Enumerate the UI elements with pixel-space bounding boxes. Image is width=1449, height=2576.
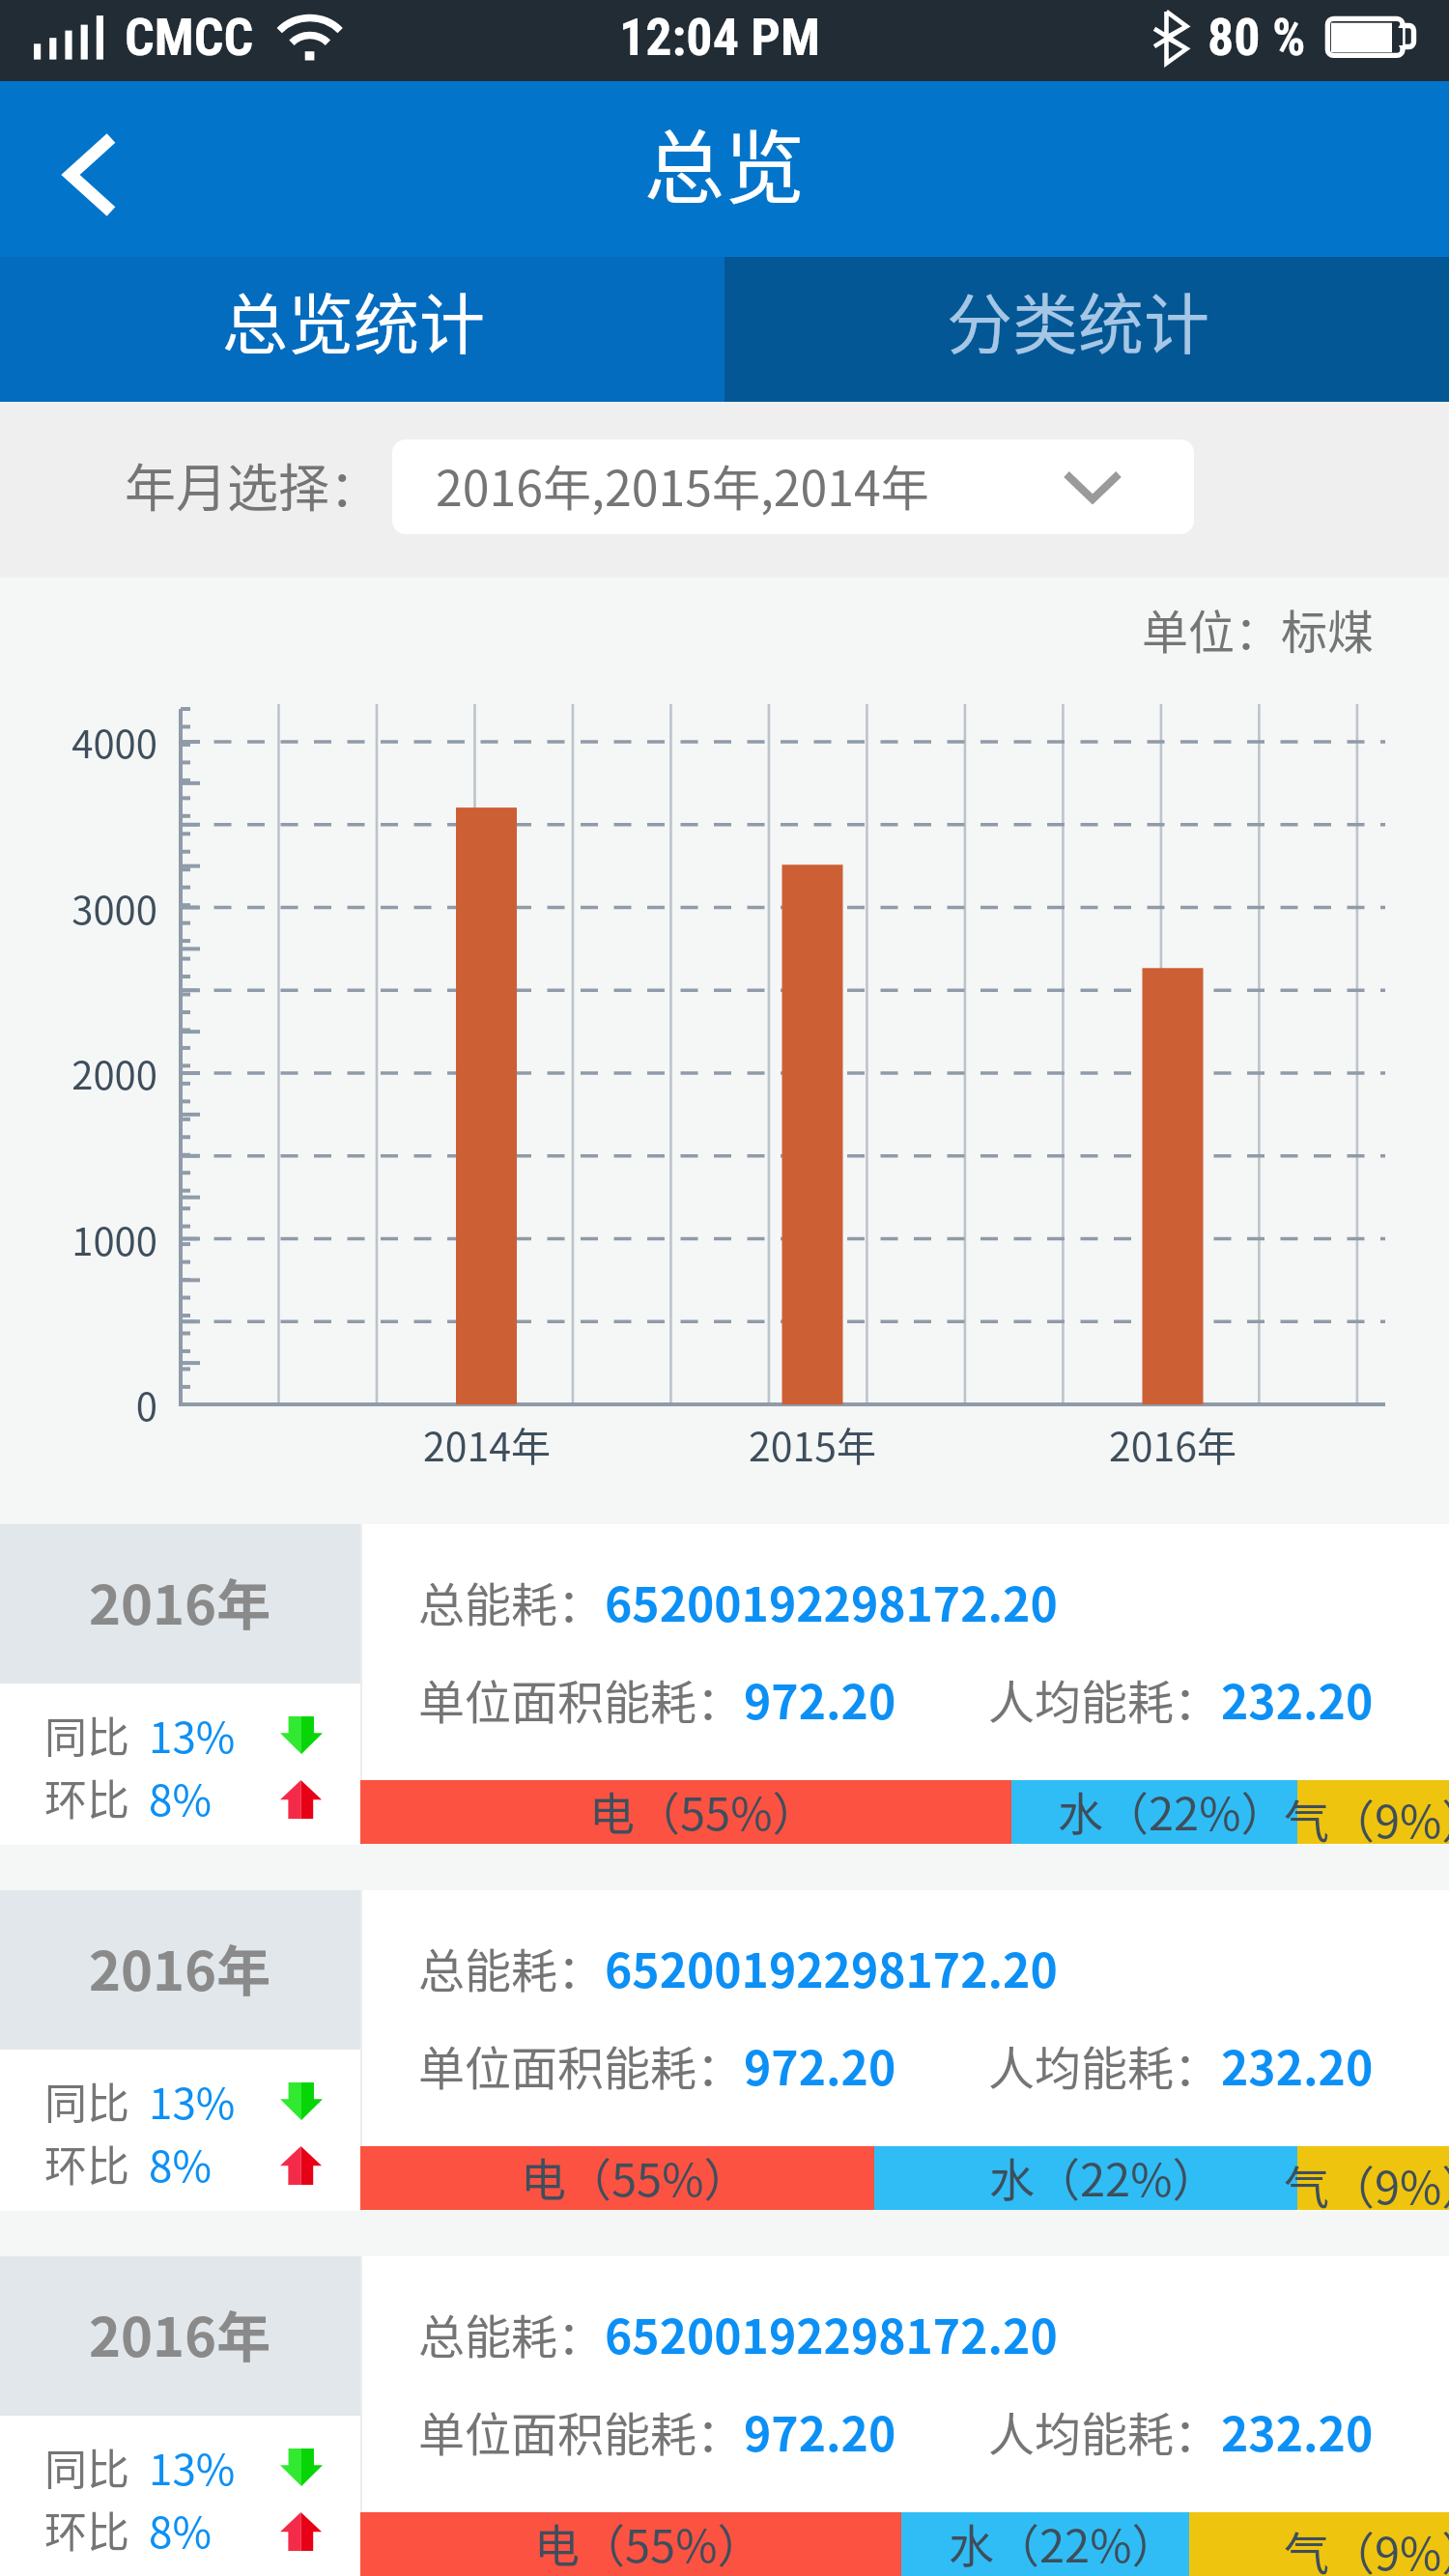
staticText: 总览统计 xyxy=(222,272,486,367)
staticText: 2016年 xyxy=(1028,1415,1318,1472)
button[interactable]: 2016年 xyxy=(0,2256,1449,2576)
staticText: 单位面积能耗： xyxy=(418,2031,744,2099)
staticText: 气（9%） xyxy=(1284,2517,1449,2576)
staticText: 232.20 xyxy=(1221,2397,1374,2465)
staticText: 总能耗： xyxy=(418,2300,605,2367)
staticText: 同比 xyxy=(44,1704,129,1766)
staticText: 2015年 xyxy=(668,1415,957,1472)
staticText: 单位面积能耗： xyxy=(418,2397,744,2465)
staticText: 环比 xyxy=(44,2499,129,2561)
staticText: 总览 xyxy=(0,104,1449,220)
staticText: 2016年,2015年,2014年 xyxy=(436,450,929,520)
staticText: 0 xyxy=(0,1376,157,1432)
staticText: 1000 xyxy=(0,1211,157,1267)
staticText: 环比 xyxy=(44,1767,129,1828)
staticText: 气（9%） xyxy=(1284,2151,1449,2215)
staticText: 年月选择： xyxy=(125,448,381,523)
staticText: 电（55%） xyxy=(534,2509,763,2573)
staticText: 65200192298172.20 xyxy=(605,2300,1058,2367)
staticText: 3000 xyxy=(0,880,157,936)
staticText: 单位面积能耗： xyxy=(418,1665,744,1733)
staticText: 同比 xyxy=(44,2436,129,2498)
staticText: CMCC xyxy=(125,7,254,68)
staticText: 2014年 xyxy=(342,1415,632,1472)
staticText: 2016年 xyxy=(89,1928,271,2006)
staticText: 12:04 PM xyxy=(619,7,821,68)
staticText: 2000 xyxy=(0,1045,157,1101)
staticText: 2016年 xyxy=(89,2294,271,2372)
staticText: 单位：标煤 xyxy=(0,595,1374,663)
staticText: 80 % xyxy=(1207,7,1306,68)
staticText: 4000 xyxy=(0,714,157,770)
staticText: 972.20 xyxy=(744,1665,896,1733)
button[interactable]: 总览统计 xyxy=(0,257,724,402)
staticText: 总能耗： xyxy=(418,1568,605,1635)
staticText: 电（55%） xyxy=(589,1777,818,1841)
staticText: 8% xyxy=(149,1767,212,1828)
staticText: 水（22%） xyxy=(989,2143,1218,2207)
staticText: 232.20 xyxy=(1221,2031,1374,2099)
staticText: 232.20 xyxy=(1221,1665,1374,1733)
button[interactable]: 2016年 xyxy=(0,1524,1449,1845)
staticText: 13% xyxy=(149,1704,236,1766)
staticText: 人均能耗： xyxy=(988,2031,1221,2099)
staticText: 972.20 xyxy=(744,2397,896,2465)
staticText: 13% xyxy=(149,2070,236,2132)
staticText: 972.20 xyxy=(744,2031,896,2099)
staticText: 气（9%） xyxy=(1284,1785,1449,1849)
staticText: 水（22%） xyxy=(1058,1777,1287,1841)
staticText: 65200192298172.20 xyxy=(605,1934,1058,2001)
staticText: 人均能耗： xyxy=(988,2397,1221,2465)
staticText: 环比 xyxy=(44,2133,129,2194)
staticText: 电（55%） xyxy=(521,2143,750,2207)
button[interactable]: 2016年,2015年,2014年 xyxy=(392,439,1194,534)
staticText: 65200192298172.20 xyxy=(605,1568,1058,1635)
button[interactable]: 2016年 xyxy=(0,1890,1449,2211)
staticText: 13% xyxy=(149,2436,236,2498)
staticText: 同比 xyxy=(44,2070,129,2132)
staticText: 分类统计 xyxy=(947,272,1210,367)
button[interactable]: 分类统计 xyxy=(724,257,1449,402)
staticText: 8% xyxy=(149,2499,212,2561)
staticText: 2016年 xyxy=(89,1562,271,1640)
staticText: 人均能耗： xyxy=(988,1665,1221,1733)
staticText: 水（22%） xyxy=(949,2509,1178,2573)
button[interactable]: Back xyxy=(0,81,164,257)
staticText: 总能耗： xyxy=(418,1934,605,2001)
staticText: 8% xyxy=(149,2133,212,2194)
